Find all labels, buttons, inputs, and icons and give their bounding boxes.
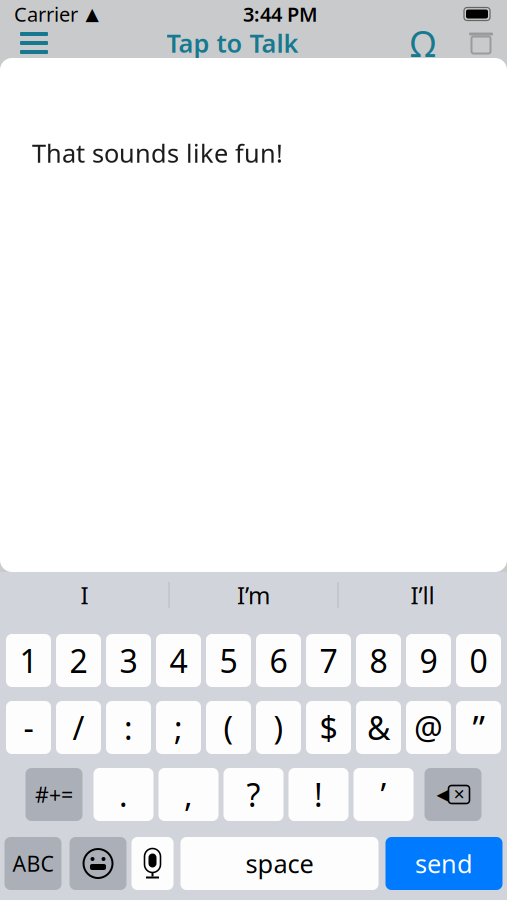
staticText: -	[23, 706, 33, 749]
staticText: 7	[319, 639, 337, 682]
staticText: &	[367, 706, 390, 749]
staticText: I’m	[237, 579, 270, 611]
button[interactable]: (	[206, 701, 251, 754]
staticText: )	[273, 706, 283, 749]
staticText: I’ll	[410, 579, 434, 611]
button[interactable]: I’m	[169, 572, 337, 618]
button[interactable]: Menu	[6, 28, 62, 58]
button[interactable]: 4	[156, 634, 201, 687]
button[interactable]: ABC	[4, 837, 61, 890]
button[interactable]: @	[406, 701, 451, 754]
button[interactable]: ’	[353, 768, 413, 821]
button[interactable]: I	[0, 572, 168, 618]
staticText: 4	[169, 639, 187, 682]
button[interactable]: space	[180, 837, 378, 890]
button[interactable]: 9	[406, 634, 451, 687]
button[interactable]: ”	[456, 701, 501, 754]
staticText: 6	[269, 639, 287, 682]
staticText: ,	[184, 773, 193, 816]
button[interactable]: 6	[256, 634, 301, 687]
staticText: ABC	[12, 849, 53, 878]
staticText: 2	[69, 639, 87, 682]
staticText: 5	[219, 639, 237, 682]
staticText: ’	[380, 773, 386, 816]
staticText: ◀	[436, 785, 448, 804]
button[interactable]: ;	[156, 701, 201, 754]
button[interactable]: Listen	[403, 28, 443, 58]
staticText: ▲	[85, 4, 98, 24]
staticText: space	[245, 847, 313, 880]
staticText: ✕	[453, 786, 465, 803]
staticText: Tap to Talk	[166, 26, 298, 60]
staticText: #+=	[35, 780, 73, 809]
staticText: 3:44 PM	[243, 1, 318, 27]
staticText: @	[414, 706, 443, 749]
button[interactable]: Dictate	[131, 837, 173, 890]
staticText: :	[124, 706, 133, 749]
button[interactable]: 7	[306, 634, 351, 687]
button[interactable]: :	[106, 701, 151, 754]
button[interactable]: send	[385, 837, 502, 890]
button[interactable]: I’ll	[338, 572, 506, 618]
button[interactable]: Emoji	[69, 837, 126, 890]
staticText: $	[319, 706, 337, 749]
button[interactable]: -	[6, 701, 51, 754]
staticText: 9	[419, 639, 437, 682]
staticText: Ω	[410, 19, 436, 67]
button[interactable]: Delete	[424, 768, 481, 821]
button[interactable]: Clear conversation	[461, 28, 501, 58]
button[interactable]: ?	[223, 768, 283, 821]
staticText: /	[72, 706, 84, 749]
button[interactable]: 2	[56, 634, 101, 687]
staticText: ;	[174, 706, 183, 749]
staticText: .	[119, 773, 128, 816]
button[interactable]: &	[356, 701, 401, 754]
staticText: !	[314, 773, 323, 816]
button[interactable]: 3	[106, 634, 151, 687]
button[interactable]: ,	[158, 768, 218, 821]
button[interactable]: $	[306, 701, 351, 754]
staticText: 0	[469, 639, 487, 682]
staticText: 1	[19, 639, 37, 682]
button[interactable]: .	[93, 768, 153, 821]
staticText: ”	[472, 704, 484, 750]
staticText: (	[223, 706, 233, 749]
staticText: 3	[119, 639, 137, 682]
staticText: 8	[369, 639, 387, 682]
button[interactable]: /	[56, 701, 101, 754]
button[interactable]: #+=	[25, 768, 82, 821]
staticText: I	[80, 579, 88, 611]
button[interactable]: 0	[456, 634, 501, 687]
button[interactable]: 1	[6, 634, 51, 687]
staticText: send	[415, 847, 473, 880]
button[interactable]: 5	[206, 634, 251, 687]
staticText: Carrier	[14, 1, 78, 27]
button[interactable]: 8	[356, 634, 401, 687]
button[interactable]: )	[256, 701, 301, 754]
staticText: That sounds like fun!	[32, 136, 283, 170]
button[interactable]: !	[288, 768, 348, 821]
staticText: ?	[246, 773, 260, 816]
